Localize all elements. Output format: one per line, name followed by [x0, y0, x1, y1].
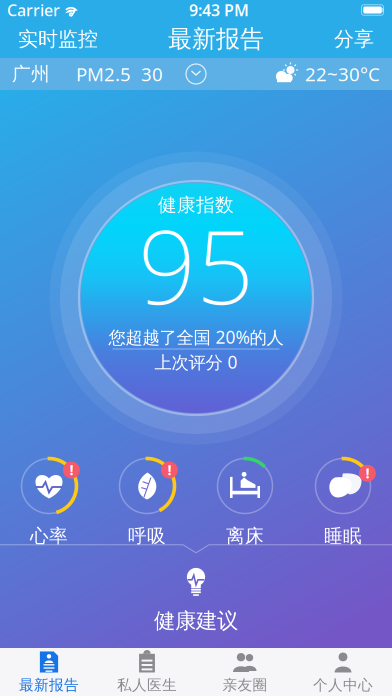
staticText: 睡眠 [324, 524, 362, 547]
button[interactable]: 亲友圈 [196, 646, 294, 696]
staticText: 呼吸 [128, 524, 166, 547]
staticText: 心率 [30, 524, 68, 547]
staticText: ! [365, 463, 369, 483]
button[interactable]: 实时监控 [6, 20, 110, 58]
staticText: 个人中心 [313, 676, 373, 694]
staticText: 您超越了全国 20%的人 [108, 325, 283, 348]
button[interactable]: 分享 [322, 20, 386, 58]
staticText: Carrier [7, 0, 60, 21]
button[interactable]: ! [98, 451, 196, 549]
staticText: 9:43 PM [189, 0, 249, 21]
button[interactable]: ! [294, 451, 392, 549]
staticText: ! [167, 460, 171, 479]
button[interactable]: 私人医生 [98, 646, 196, 696]
button[interactable]: 健康建议 [0, 544, 392, 648]
staticText: 22~30°C [305, 62, 380, 86]
staticText: ! [69, 460, 73, 479]
button[interactable]: 最新报告 [0, 646, 98, 696]
staticText: 95 [138, 198, 254, 332]
staticText: 健康建议 [154, 608, 238, 634]
staticText: 离床 [226, 524, 264, 547]
button[interactable]: ! [0, 451, 98, 549]
staticText: 分享 [334, 27, 374, 51]
staticText: 最新报告 [168, 24, 264, 54]
staticText: 亲友圈 [222, 676, 267, 694]
button[interactable]: 离床 [196, 451, 294, 549]
button[interactable]: 展开详情 [177, 58, 215, 90]
button[interactable]: 个人中心 [294, 646, 392, 696]
staticText: 最新报告 [19, 676, 79, 694]
staticText: 上次评分 0 [154, 350, 237, 373]
staticText: 广州 [12, 62, 50, 85]
staticText: 健康指数 [158, 193, 234, 216]
staticText: 实时监控 [18, 27, 98, 51]
staticText: PM2.5 30 [76, 62, 163, 86]
staticText: 私人医生 [117, 676, 177, 694]
